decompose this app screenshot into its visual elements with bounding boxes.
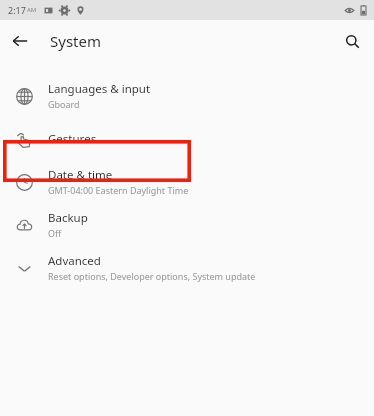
staticText: Gboard [48,98,80,110]
staticText: Languages & input [48,81,151,97]
button[interactable]: Advanced [0,246,374,289]
staticText: Gestures [48,131,97,147]
button[interactable]: Date & time [0,160,374,203]
button[interactable]: Backup [0,203,374,246]
staticText: AM [27,6,37,14]
staticText: 2:17 [8,4,26,16]
button[interactable]: Languages & input [0,74,374,117]
button[interactable]: Search [339,28,365,54]
button[interactable]: Gestures [0,117,374,160]
staticText: System [50,31,101,51]
staticText: Advanced [48,253,101,269]
staticText: Backup [48,210,88,226]
staticText: Reset options, Developer options, System… [48,270,256,282]
button[interactable]: Back [7,28,33,54]
staticText: Off [48,227,62,239]
staticText: Date & time [48,167,113,183]
staticText: GMT-04:00 Eastern Daylight Time [48,184,189,196]
